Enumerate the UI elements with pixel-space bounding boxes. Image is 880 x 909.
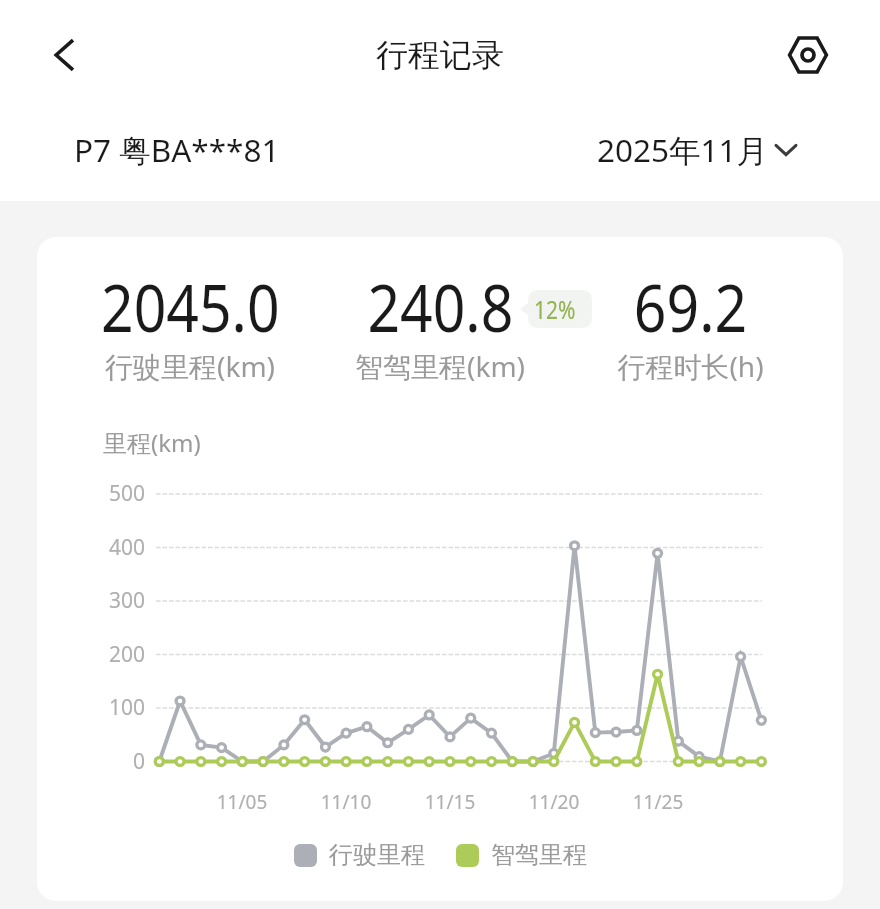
button[interactable]: Back bbox=[30, 27, 86, 83]
staticText: 240.8 bbox=[367, 261, 514, 351]
staticText: 11/15 bbox=[405, 789, 495, 815]
staticText: P7 粤BA***81 bbox=[74, 128, 280, 171]
staticText: 200 bbox=[37, 640, 145, 669]
staticText: 300 bbox=[37, 586, 145, 615]
staticText: 行程记录 bbox=[376, 35, 504, 75]
staticText: 智驾里程 bbox=[491, 840, 587, 870]
staticText: 500 bbox=[37, 479, 145, 508]
staticText: 行驶里程 bbox=[329, 840, 425, 870]
staticText: 2045.0 bbox=[101, 261, 280, 351]
staticText: 行驶里程(km) bbox=[105, 347, 275, 385]
staticText: 行程时长(h) bbox=[617, 347, 764, 385]
button[interactable]: 智驾里程 bbox=[456, 840, 587, 870]
staticText: 11/05 bbox=[197, 789, 287, 815]
staticText: 智驾里程(km) bbox=[355, 347, 525, 385]
button[interactable]: 行驶里程 bbox=[294, 840, 425, 870]
staticText: 100 bbox=[37, 693, 145, 722]
staticText: 11/25 bbox=[613, 789, 703, 815]
staticText: 69.2 bbox=[634, 261, 747, 351]
button[interactable]: 2025年11月 bbox=[597, 128, 799, 171]
staticText: 2025年11月 bbox=[597, 128, 769, 171]
staticText: 11/20 bbox=[509, 789, 599, 815]
staticText: 400 bbox=[37, 533, 145, 562]
button[interactable]: Settings bbox=[780, 27, 836, 83]
staticText: 0 bbox=[37, 747, 145, 776]
staticText: 里程(km) bbox=[103, 426, 201, 459]
staticText: 11/10 bbox=[301, 789, 391, 815]
staticText: 12% bbox=[534, 292, 576, 326]
